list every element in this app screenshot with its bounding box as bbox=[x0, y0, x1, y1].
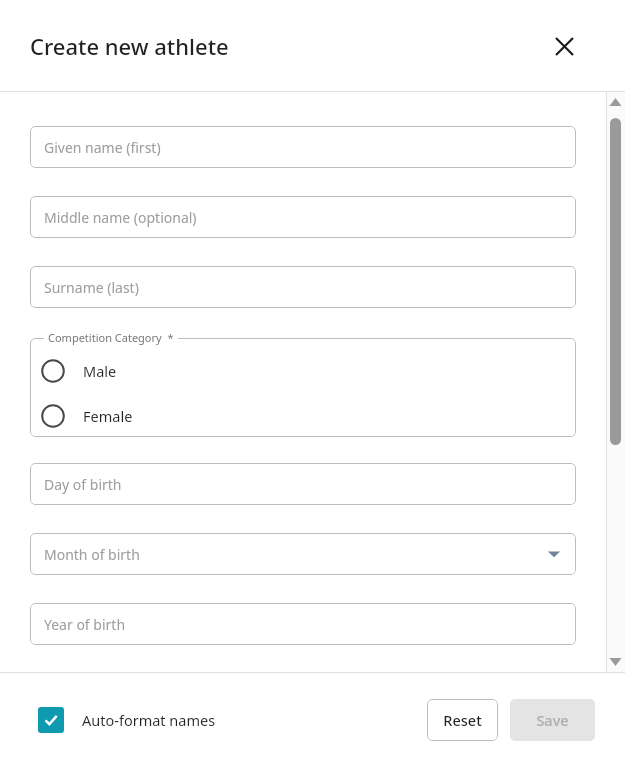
staticText: Given name (first) bbox=[44, 138, 161, 157]
button[interactable]: Female bbox=[30, 397, 576, 435]
staticText: Competition Category * bbox=[48, 330, 174, 345]
staticText: Reset bbox=[443, 710, 482, 730]
staticText: Year of birth bbox=[44, 615, 126, 634]
button[interactable]: Close bbox=[548, 30, 580, 62]
button[interactable]: Male bbox=[30, 352, 576, 390]
staticText: Female bbox=[83, 406, 133, 426]
staticText: Day of birth bbox=[44, 475, 122, 494]
staticText: Middle name (optional) bbox=[44, 208, 197, 227]
button[interactable]: Month of birth bbox=[30, 533, 576, 575]
button[interactable]: Year of birth bbox=[30, 603, 576, 645]
button[interactable]: Day of birth bbox=[30, 463, 576, 505]
button[interactable]: Reset bbox=[427, 699, 498, 741]
staticText: Month of birth bbox=[44, 545, 140, 564]
staticText: Auto-format names bbox=[82, 710, 216, 730]
button[interactable]: Auto-format names bbox=[38, 707, 216, 733]
staticText: Save bbox=[536, 710, 569, 730]
staticText: Create new athlete bbox=[30, 31, 229, 61]
staticText: Male bbox=[83, 361, 117, 381]
staticText: Surname (last) bbox=[44, 278, 139, 297]
button[interactable]: Save bbox=[510, 699, 595, 741]
button[interactable]: Given name (first) bbox=[30, 126, 576, 168]
button[interactable]: Surname (last) bbox=[30, 266, 576, 308]
button[interactable]: Middle name (optional) bbox=[30, 196, 576, 238]
